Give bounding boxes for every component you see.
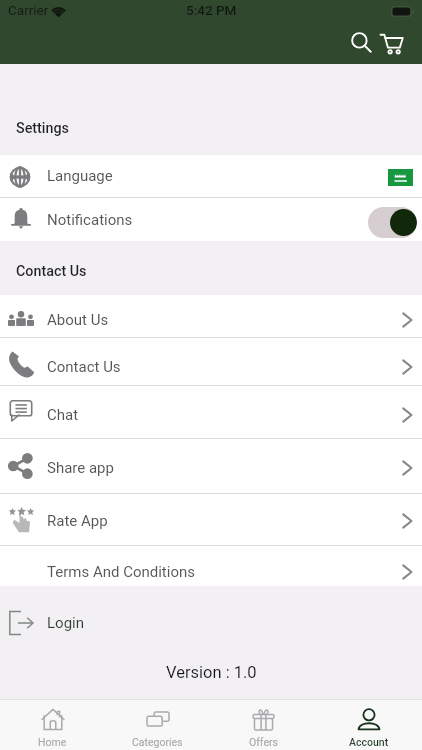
staticText: Chat [47,406,79,424]
staticText: Contact Us [47,358,121,376]
staticText: Account [349,736,389,748]
staticText: Categories [132,736,183,748]
staticText: Home [38,736,67,748]
button[interactable]: Notifications toggle [368,207,417,238]
staticText: 5:42 PM [186,2,237,18]
staticText: Rate App [47,512,108,530]
button[interactable]: Chat [0,386,422,439]
staticText: Offers [249,736,278,748]
staticText: About Us [47,311,109,329]
button[interactable]: Terms And Conditions [0,546,422,586]
staticText: Login [47,614,84,632]
button[interactable]: Home [0,699,105,750]
staticText: Language [47,167,113,185]
button[interactable]: Rate App [0,494,422,546]
staticText: Contact Us [16,263,87,280]
staticText: Share app [47,459,114,477]
staticText: Version : 1.0 [166,663,257,682]
button[interactable]: Login [0,602,422,644]
staticText: Carrier [8,2,49,18]
staticText: Notifications [47,211,133,229]
button[interactable]: Offers [210,699,316,750]
button[interactable]: Cart [380,32,403,55]
staticText: Settings [16,120,69,137]
button[interactable]: Categories [105,699,210,750]
button[interactable]: Search [351,32,372,53]
button[interactable]: Account [316,699,422,750]
button[interactable]: About Us [0,295,422,338]
staticText: Terms And Conditions [47,563,195,581]
button[interactable]: Share app [0,439,422,494]
button[interactable]: Language [0,155,422,198]
button[interactable]: Contact Us [0,338,422,386]
button[interactable]: Notifications [0,198,422,241]
